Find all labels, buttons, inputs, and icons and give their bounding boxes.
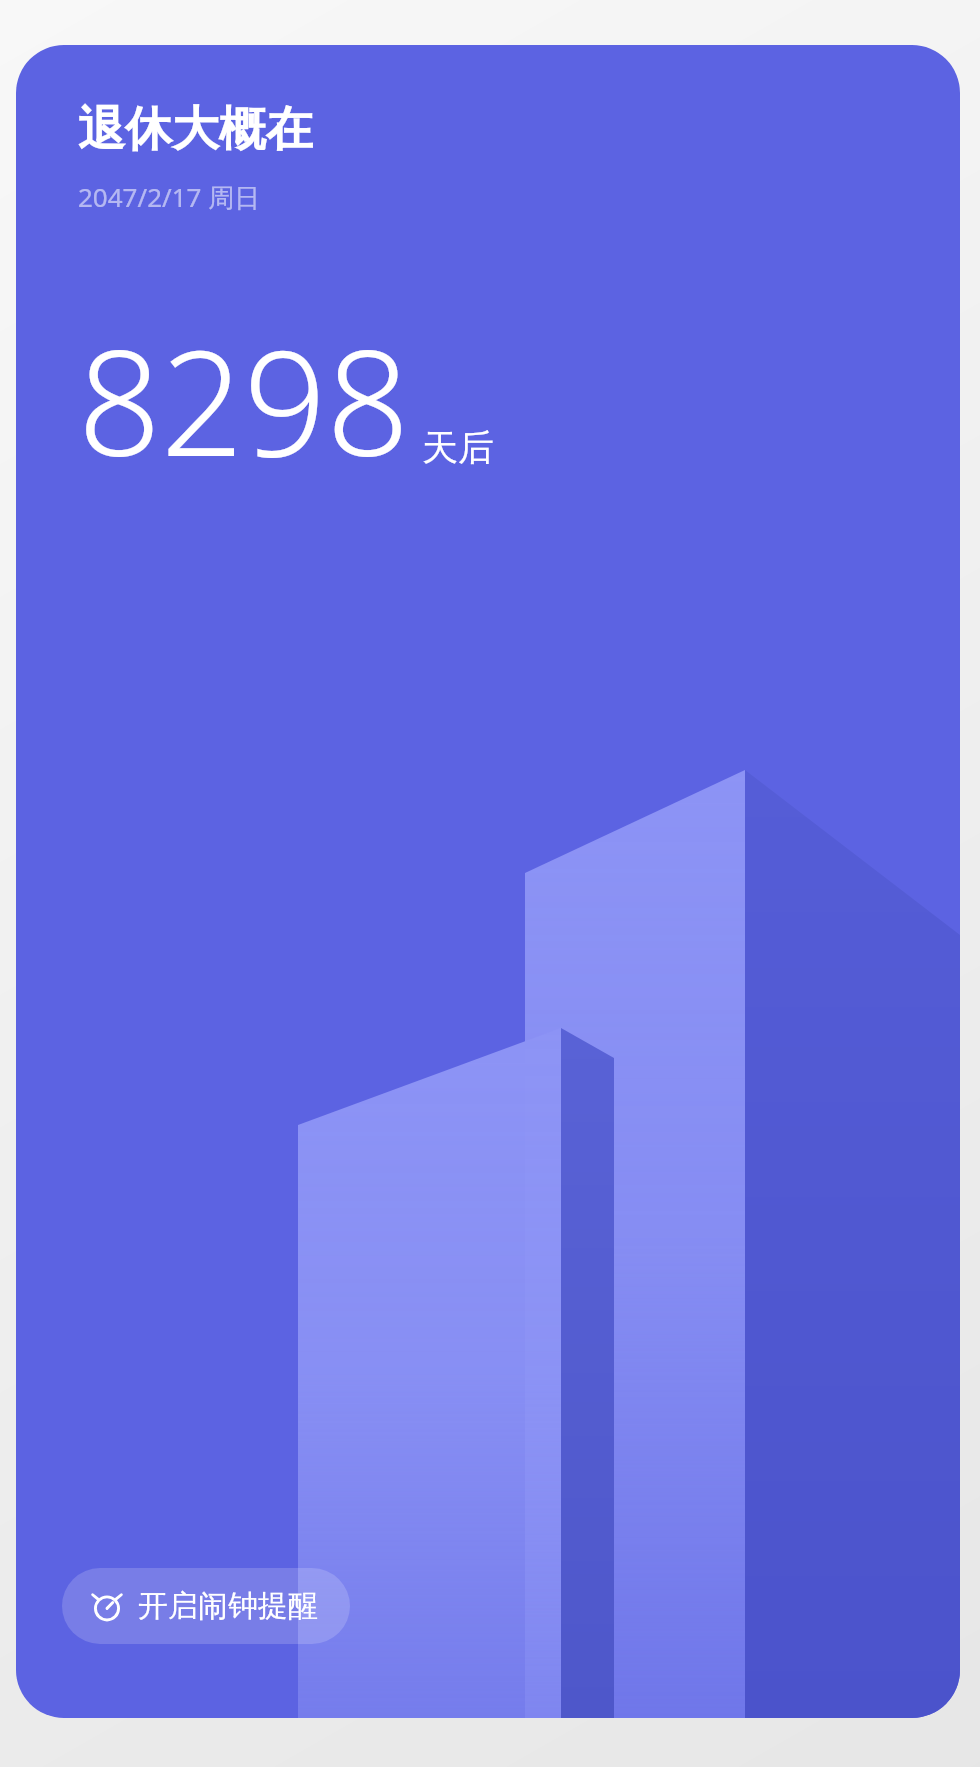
staticText: 8298 [78, 301, 410, 498]
staticText: 退休大概在 [78, 100, 313, 159]
staticText: 天后 [422, 425, 494, 470]
staticText: 2047/2/17 周日 [78, 179, 261, 215]
staticText: 开启闹钟提醒 [138, 1587, 318, 1625]
button[interactable]: 开启闹钟提醒 [62, 1568, 350, 1644]
